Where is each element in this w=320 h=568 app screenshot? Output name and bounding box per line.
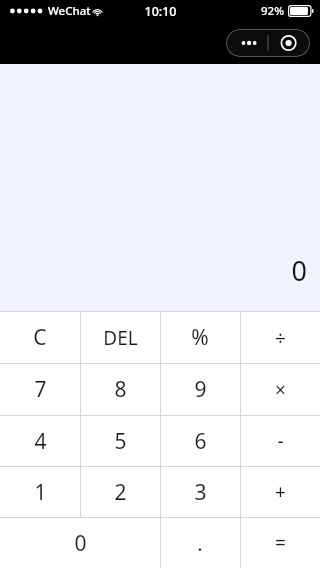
- staticText: +: [275, 479, 286, 505]
- staticText: 2: [114, 478, 127, 507]
- staticText: DEL: [103, 325, 138, 351]
- staticText: ×: [275, 377, 286, 403]
- button[interactable]: ×: [240, 364, 320, 415]
- button[interactable]: Mini program menu: [226, 29, 310, 57]
- staticText: 7: [34, 375, 47, 404]
- button[interactable]: ÷: [240, 312, 320, 363]
- staticText: 10:10: [144, 3, 177, 20]
- staticText: ÷: [275, 325, 286, 351]
- button[interactable]: 7: [0, 364, 80, 415]
- button[interactable]: 1: [0, 467, 80, 517]
- button[interactable]: 0: [0, 518, 160, 568]
- button[interactable]: 8: [80, 364, 160, 415]
- button[interactable]: 9: [160, 364, 240, 415]
- button[interactable]: =: [240, 518, 320, 568]
- button[interactable]: 4: [0, 416, 80, 466]
- button[interactable]: 2: [80, 467, 160, 517]
- staticText: 3: [194, 478, 207, 507]
- staticText: 92%: [261, 3, 284, 19]
- staticText: 4: [34, 427, 47, 456]
- staticText: 0: [74, 529, 87, 558]
- button[interactable]: -: [240, 416, 320, 466]
- staticText: 9: [194, 375, 207, 404]
- staticText: 1: [34, 478, 47, 507]
- button[interactable]: C: [0, 312, 80, 363]
- staticText: =: [275, 530, 286, 556]
- staticText: %: [191, 323, 209, 352]
- staticText: C: [33, 323, 47, 352]
- staticText: 5: [114, 427, 127, 456]
- button[interactable]: 3: [160, 467, 240, 517]
- button[interactable]: 5: [80, 416, 160, 466]
- staticText: WeChat: [48, 3, 91, 19]
- button[interactable]: %: [160, 312, 240, 363]
- button[interactable]: 6: [160, 416, 240, 466]
- button[interactable]: DEL: [80, 312, 160, 363]
- staticText: -: [277, 428, 284, 454]
- staticText: 6: [194, 427, 207, 456]
- staticText: .: [197, 530, 203, 557]
- button[interactable]: .: [160, 518, 240, 568]
- button[interactable]: +: [240, 467, 320, 517]
- staticText: 8: [114, 375, 127, 404]
- staticText: 0: [291, 252, 307, 289]
